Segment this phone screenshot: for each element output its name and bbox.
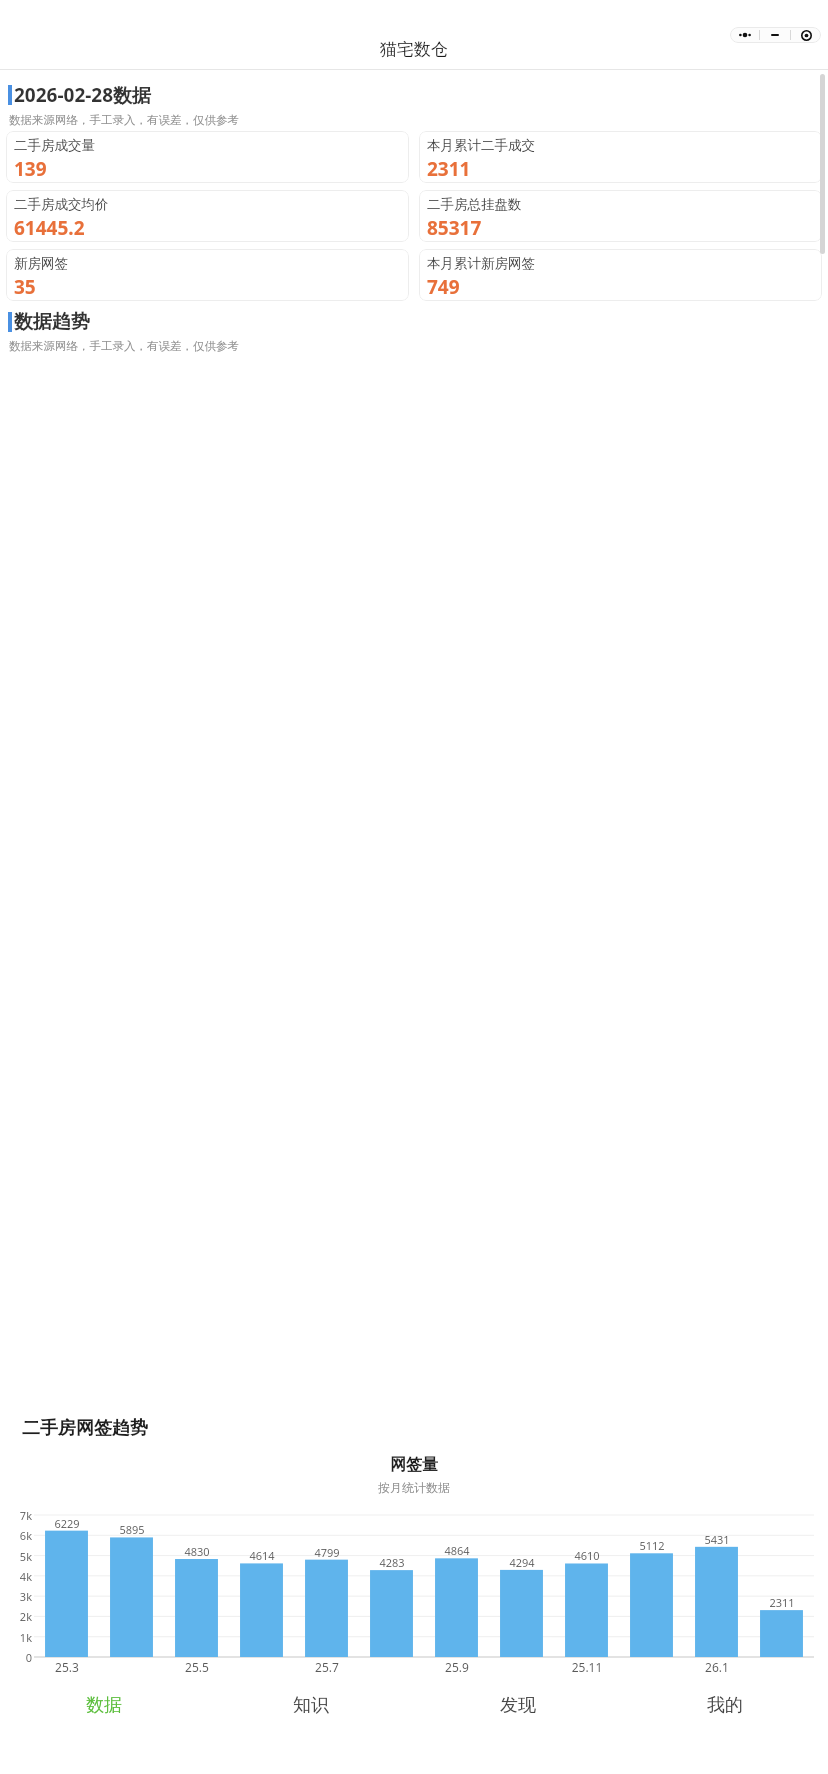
button[interactable]: 新房网签 bbox=[6, 249, 409, 301]
staticText: 知识 bbox=[293, 1694, 329, 1717]
staticText: 二手房成交量 bbox=[14, 137, 95, 154]
staticText: 6229 bbox=[45, 1516, 89, 1531]
staticText: 二手房网签趋势 bbox=[22, 1417, 148, 1440]
staticText: 7k bbox=[10, 1508, 32, 1523]
staticText: 4614 bbox=[240, 1548, 284, 1563]
staticText: 25.9 bbox=[435, 1659, 479, 1675]
staticText: 749 bbox=[427, 274, 460, 300]
staticText: 数据来源网络，手工录入，有误差，仅供参考 bbox=[9, 113, 239, 127]
staticText: 5895 bbox=[110, 1522, 154, 1537]
staticText: 本月累计新房网签 bbox=[427, 255, 535, 272]
staticText: 数据来源网络，手工录入，有误差，仅供参考 bbox=[9, 339, 239, 353]
staticText: 本月累计二手成交 bbox=[427, 137, 535, 154]
button[interactable]: 发现 bbox=[414, 1676, 621, 1774]
button[interactable]: 本月累计二手成交 bbox=[419, 131, 822, 183]
staticText: 猫宅数仓 bbox=[380, 39, 448, 60]
staticText: 2311 bbox=[760, 1595, 804, 1610]
button[interactable]: 二手房成交均价 bbox=[6, 190, 409, 242]
staticText: 2311 bbox=[427, 156, 471, 182]
staticText: 25.7 bbox=[305, 1659, 349, 1675]
staticText: 5112 bbox=[630, 1538, 674, 1553]
staticText: 4830 bbox=[175, 1544, 219, 1559]
staticText: 1k bbox=[10, 1630, 32, 1645]
staticText: 85317 bbox=[427, 215, 482, 241]
staticText: 25.11 bbox=[565, 1659, 609, 1675]
button[interactable]: 二手房总挂盘数 bbox=[419, 190, 822, 242]
staticText: 4799 bbox=[305, 1545, 349, 1560]
staticText: 2026-02-28数据 bbox=[14, 82, 152, 108]
staticText: 25.5 bbox=[175, 1659, 219, 1675]
staticText: 5k bbox=[10, 1549, 32, 1564]
staticText: 新房网签 bbox=[14, 255, 68, 272]
staticText: 2k bbox=[10, 1609, 32, 1624]
staticText: 61445.2 bbox=[14, 215, 85, 241]
staticText: 4864 bbox=[435, 1543, 479, 1558]
staticText: 4k bbox=[10, 1569, 32, 1584]
staticText: 6k bbox=[10, 1528, 32, 1543]
staticText: 我的 bbox=[707, 1694, 743, 1717]
staticText: 5431 bbox=[695, 1532, 739, 1547]
staticText: 按月统计数据 bbox=[8, 1480, 820, 1495]
staticText: 35 bbox=[14, 274, 36, 300]
staticText: 25.3 bbox=[45, 1659, 89, 1675]
button[interactable]: Minimize bbox=[760, 27, 790, 43]
button[interactable]: 数据 bbox=[0, 1676, 207, 1774]
button[interactable]: 二手房成交量 bbox=[6, 131, 409, 183]
button[interactable]: Close bbox=[791, 27, 821, 43]
button[interactable]: 本月累计新房网签 bbox=[419, 249, 822, 301]
staticText: 26.1 bbox=[695, 1659, 739, 1675]
staticText: 139 bbox=[14, 156, 47, 182]
staticText: 4294 bbox=[500, 1555, 544, 1570]
staticText: 3k bbox=[10, 1589, 32, 1604]
staticText: 0 bbox=[10, 1650, 32, 1665]
staticText: 网签量 bbox=[8, 1455, 820, 1475]
staticText: 发现 bbox=[500, 1694, 536, 1717]
staticText: 二手房成交均价 bbox=[14, 196, 109, 213]
staticText: 4283 bbox=[370, 1555, 414, 1570]
staticText: 数据趋势 bbox=[14, 310, 90, 334]
staticText: 4610 bbox=[565, 1548, 609, 1563]
staticText: 二手房总挂盘数 bbox=[427, 196, 522, 213]
button[interactable]: 知识 bbox=[207, 1676, 414, 1774]
staticText: 数据 bbox=[86, 1694, 122, 1717]
button[interactable]: 我的 bbox=[621, 1676, 828, 1774]
button[interactable]: More bbox=[730, 27, 759, 43]
